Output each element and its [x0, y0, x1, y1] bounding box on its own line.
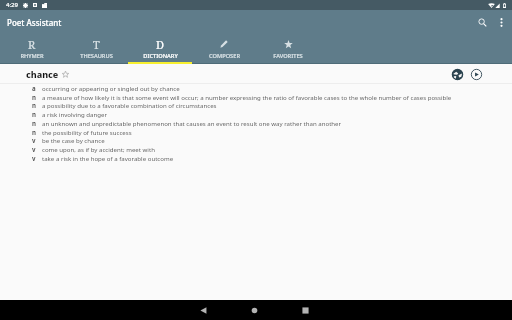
button[interactable]: n [0, 93, 512, 102]
staticText: T [93, 37, 100, 52]
staticText: a risk involving danger [42, 110, 107, 118]
staticText: D [156, 37, 164, 52]
button[interactable]: v [0, 136, 512, 145]
staticText: come upon, as if by accident; meet with [42, 145, 155, 153]
button[interactable]: Search [473, 10, 491, 34]
staticText: a possibility due to a favorable combina… [42, 101, 217, 109]
button[interactable]: T [64, 34, 128, 64]
staticText: a [32, 84, 36, 92]
staticText: an unknown and unpredictable phenomenon … [42, 119, 342, 127]
staticText: THESAURUS [80, 52, 113, 60]
button[interactable]: n [0, 101, 512, 110]
button[interactable]: n [0, 110, 512, 119]
staticText: v [32, 154, 36, 162]
staticText: n [32, 93, 36, 101]
staticText: be the case by chance [42, 136, 105, 144]
staticText: Poet Assistant [7, 17, 62, 28]
button[interactable]: More options [491, 10, 511, 34]
staticText: COMPOSER [209, 52, 240, 60]
button[interactable]: Home [229, 300, 280, 320]
staticText: n [32, 119, 36, 127]
staticText: v [32, 136, 36, 144]
button[interactable]: n [0, 128, 512, 137]
button[interactable]: v [0, 154, 512, 163]
staticText: R [28, 37, 36, 52]
button[interactable]: COMPOSER [192, 34, 256, 64]
staticText: a measure of how likely it is that some … [42, 93, 452, 101]
button[interactable]: Add to favorites [59, 68, 71, 80]
staticText: v [32, 145, 36, 153]
staticText: n [32, 101, 36, 109]
staticText: 4:29 [6, 1, 18, 9]
button[interactable]: v [0, 145, 512, 154]
staticText: RHYMER [20, 52, 44, 60]
button[interactable]: n [0, 119, 512, 128]
staticText: n [32, 110, 36, 118]
button[interactable]: FAVORITES [256, 34, 320, 64]
button[interactable]: R [0, 34, 64, 64]
staticText: DICTIONARY [143, 52, 178, 60]
button[interactable]: D [128, 34, 192, 64]
staticText: the possibility of future success [42, 128, 132, 136]
staticText: chance [26, 68, 59, 80]
button[interactable]: a [0, 84, 512, 93]
button[interactable]: Back [178, 300, 229, 320]
staticText: FAVORITES [273, 52, 303, 60]
button[interactable]: Play pronunciation [468, 66, 484, 82]
button[interactable]: Recents [280, 300, 331, 320]
staticText: occurring or appearing or singled out by… [42, 84, 180, 92]
staticText: n [32, 128, 36, 136]
staticText: take a risk in the hope of a favorable o… [42, 154, 174, 162]
button[interactable]: Web search [449, 66, 465, 82]
